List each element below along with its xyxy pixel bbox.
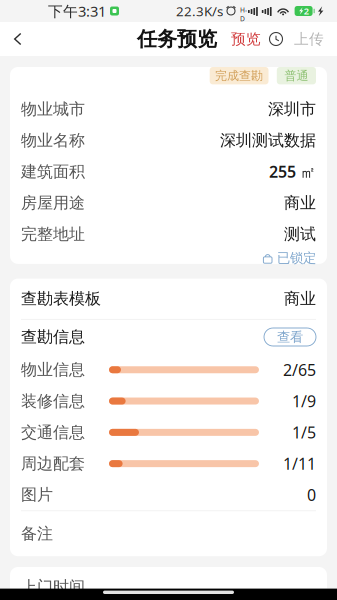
staticText: 完整地址 bbox=[21, 224, 85, 244]
staticText: 22.3K/s bbox=[176, 2, 223, 20]
staticText: 任务预览 bbox=[137, 27, 217, 51]
staticText: 查勘信息 bbox=[21, 327, 85, 347]
staticText: 备注 bbox=[21, 524, 53, 544]
staticText: 下午3:31 bbox=[48, 1, 106, 21]
staticText: 建筑面积 bbox=[21, 162, 85, 181]
staticText: 物业信息 bbox=[21, 360, 85, 380]
staticText: 物业城市 bbox=[21, 99, 85, 119]
staticText: 1/5 bbox=[292, 422, 316, 443]
button[interactable]: 查看 bbox=[264, 328, 316, 346]
staticText: 预览 bbox=[231, 30, 261, 48]
staticText: 房屋用途 bbox=[21, 193, 85, 213]
staticText: 装修信息 bbox=[21, 391, 85, 411]
button[interactable]: 历史记录 bbox=[267, 22, 285, 56]
staticText: 上传 bbox=[294, 30, 324, 48]
staticText: 测试 bbox=[284, 224, 316, 244]
staticText: 物业名称 bbox=[21, 130, 85, 150]
staticText: 1/11 bbox=[283, 453, 316, 474]
staticText: 2 bbox=[304, 5, 309, 17]
staticText: 查勘表模板 bbox=[21, 289, 101, 309]
staticText: 0 bbox=[307, 484, 316, 505]
button[interactable]: 上传 bbox=[294, 22, 324, 56]
staticText: 1/9 bbox=[292, 390, 316, 412]
button[interactable]: 预览 bbox=[231, 22, 261, 56]
staticText: 完成查勘 bbox=[215, 68, 263, 83]
staticText: 商业 bbox=[284, 289, 316, 309]
staticText: 深圳测试数据 bbox=[220, 130, 316, 150]
staticText: 上门时间 bbox=[21, 577, 85, 597]
staticText: HD bbox=[240, 5, 247, 23]
staticText: 2/65 bbox=[283, 359, 316, 380]
staticText: 商业 bbox=[284, 193, 316, 213]
staticText: 查看 bbox=[277, 329, 303, 345]
staticText: 深圳市 bbox=[268, 99, 316, 119]
staticText: 255 ㎡ bbox=[269, 161, 316, 182]
staticText: 普通 bbox=[284, 68, 308, 83]
staticText: 已锁定 bbox=[277, 250, 316, 266]
staticText: 交通信息 bbox=[21, 422, 85, 442]
staticText: 周边配套 bbox=[21, 454, 85, 473]
button[interactable]: 返回 bbox=[0, 22, 32, 56]
staticText: 图片 bbox=[21, 485, 53, 505]
